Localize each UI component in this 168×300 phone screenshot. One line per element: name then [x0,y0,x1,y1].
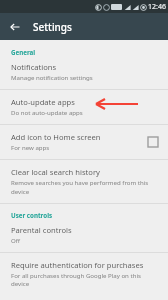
button[interactable]: Add icon to Home screen [0,125,168,159]
staticText: Do not auto-update apps [11,108,83,116]
staticText: General [11,48,36,56]
staticText: User controls [11,211,53,219]
staticText: Add icon to Home screen [11,132,101,142]
staticText: Clear local search history [11,167,100,177]
button[interactable]: Notifications [0,60,168,89]
staticText: device [11,187,30,195]
staticText: Off [11,236,20,244]
button[interactable]: Auto-update apps [0,90,168,124]
staticText: Remove searches you have performed from … [11,178,149,186]
staticText: Parental controls [11,225,72,235]
staticText: For all purchases through Google Play on… [11,271,158,287]
staticText: Notifications [11,62,57,72]
button[interactable]: Require authentication for purchases [0,253,168,295]
staticText: Auto-update apps [11,97,75,107]
staticText: Require authentication for purchases [11,260,144,270]
button[interactable]: Add icon to Home screen checkbox [148,137,158,147]
staticText: For new apps [11,143,50,151]
button[interactable]: Back [6,18,24,36]
button[interactable]: Clear local search history [0,160,168,203]
button[interactable]: Parental controls [0,223,168,252]
staticText: 12:46 [148,2,166,12]
staticText: Manage notification settings [11,73,93,81]
staticText: Settings [33,20,72,34]
